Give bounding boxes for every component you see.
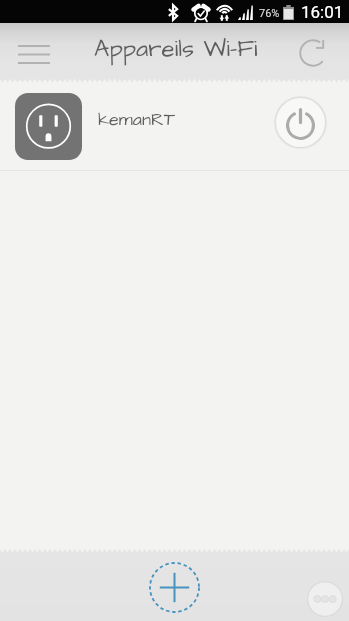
staticText: 76%	[259, 7, 280, 20]
staticText: Appareils Wi-Fi	[94, 32, 258, 65]
staticText: 16:01	[301, 2, 344, 22]
button[interactable]: kemanRT	[0, 83, 349, 170]
button[interactable]: More options	[307, 581, 343, 617]
button[interactable]: Power toggle	[274, 96, 327, 149]
staticText: kemanRT	[98, 107, 272, 132]
button[interactable]: Menu	[12, 36, 56, 72]
button[interactable]: Add device	[149, 562, 200, 613]
button[interactable]: Refresh	[294, 34, 332, 72]
